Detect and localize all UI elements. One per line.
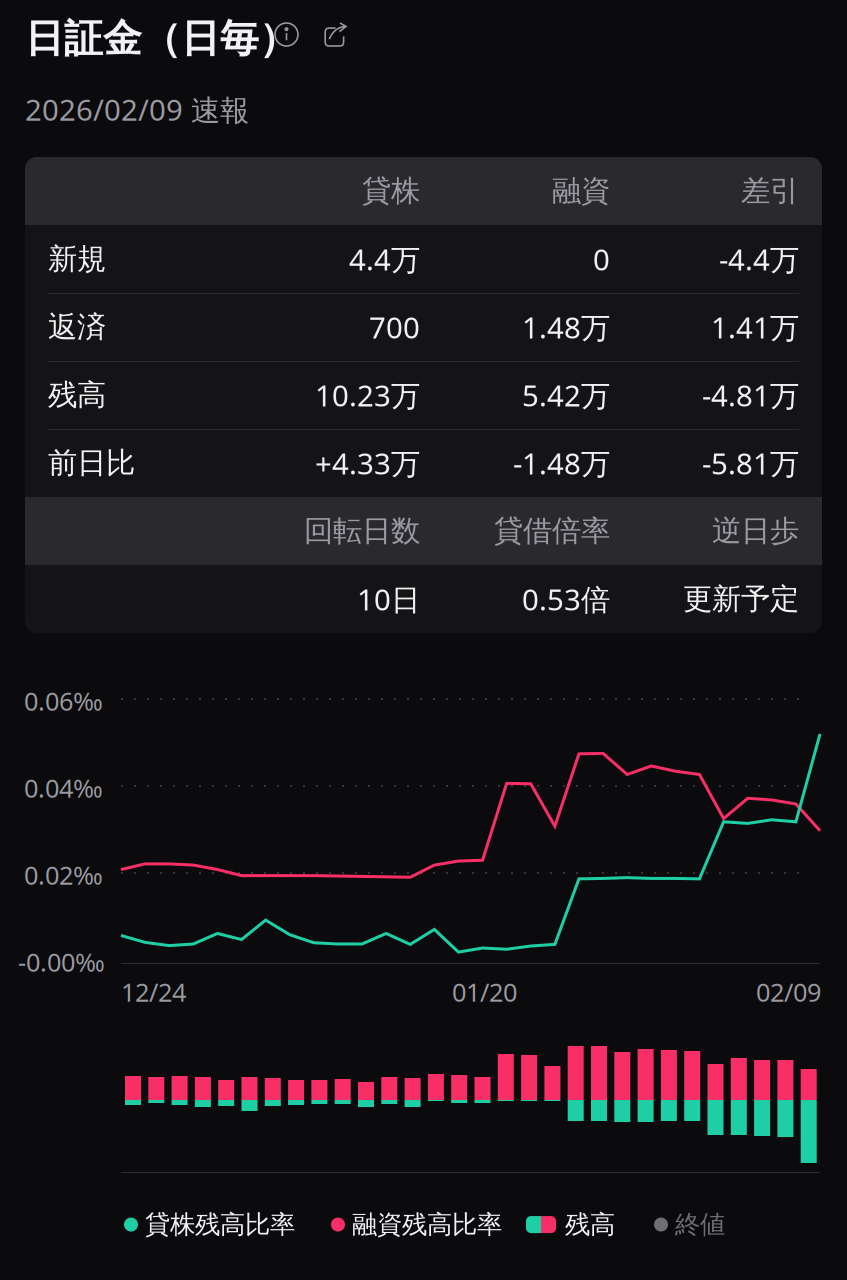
staticText: 差引 (741, 173, 799, 209)
staticText: +4.33万 (315, 443, 420, 482)
staticText: -4.81万 (702, 375, 799, 414)
staticText: 10日 (357, 579, 420, 618)
staticText: 残高 (48, 377, 106, 413)
staticText: 貸株 (362, 173, 420, 209)
staticText: 12/24 (121, 975, 186, 1009)
staticText: 残高 (565, 1209, 615, 1240)
staticText: 0.04‰ (24, 771, 103, 805)
button[interactable]: 融資残高比率 (331, 1209, 502, 1240)
staticText: 前日比 (48, 445, 135, 481)
staticText: 700 (369, 307, 420, 346)
staticText: 2026/02/09 速報 (25, 90, 249, 129)
staticText: 新規 (48, 241, 106, 277)
button[interactable]: 残高 (526, 1209, 615, 1240)
staticText: 4.4万 (349, 239, 420, 278)
staticText: 1.48万 (522, 307, 610, 346)
staticText: 貸株残高比率 (145, 1209, 295, 1240)
staticText: 0.06‰ (24, 684, 103, 718)
staticText: 更新予定 (683, 581, 799, 617)
staticText: 返済 (48, 309, 106, 345)
staticText: 日証金（日毎） (25, 15, 298, 62)
staticText: 終値 (675, 1209, 725, 1240)
staticText: -4.4万 (719, 239, 799, 278)
staticText: 融資残高比率 (352, 1209, 502, 1240)
staticText: 02/09 (756, 975, 821, 1009)
staticText: 1.41万 (711, 307, 799, 346)
staticText: 5.42万 (522, 375, 610, 414)
staticText: -5.81万 (702, 443, 799, 482)
staticText: 回転日数 (304, 513, 420, 549)
staticText: 融資 (552, 173, 610, 209)
staticText: 10.23万 (315, 375, 420, 414)
button[interactable]: 情報 (270, 18, 303, 51)
staticText: 01/20 (452, 975, 517, 1009)
button[interactable]: 貸株残高比率 (124, 1209, 295, 1240)
staticText: 0.53倍 (522, 579, 610, 618)
button[interactable]: 共有 (319, 18, 352, 51)
staticText: 逆日歩 (712, 513, 799, 549)
staticText: 0.02‰ (24, 858, 103, 892)
staticText: -0.00‰ (18, 945, 105, 979)
button[interactable]: 終値 (654, 1209, 725, 1240)
staticText: 貸借倍率 (494, 513, 610, 549)
staticText: -1.48万 (513, 443, 610, 482)
staticText: 0 (593, 239, 610, 278)
